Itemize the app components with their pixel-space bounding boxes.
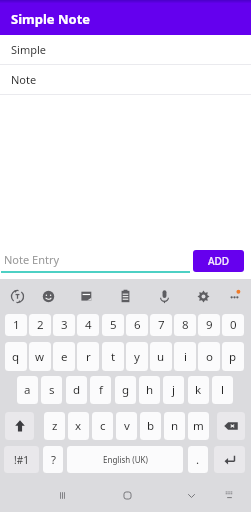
button[interactable]: r: [77, 342, 99, 371]
button[interactable]: v: [116, 412, 137, 440]
staticText: 8: [182, 317, 189, 333]
button[interactable]: 2: [29, 314, 51, 336]
staticText: w: [35, 349, 45, 365]
button[interactable]: d: [66, 376, 87, 404]
button[interactable]: 8: [174, 314, 196, 336]
button[interactable]: a: [17, 376, 38, 404]
button[interactable]: c: [92, 412, 113, 440]
button[interactable]: Clipboard: [110, 282, 140, 310]
button[interactable]: p: [222, 342, 244, 371]
button[interactable]: z: [44, 412, 65, 440]
staticText: ADD: [208, 254, 230, 268]
staticText: 7: [158, 317, 165, 333]
staticText: f: [99, 382, 103, 398]
button[interactable]: Enter: [214, 446, 245, 473]
button[interactable]: 0: [222, 314, 244, 336]
button[interactable]: 7: [150, 314, 172, 336]
button[interactable]: m: [188, 412, 209, 440]
staticText: m: [193, 418, 204, 434]
staticText: i: [184, 349, 187, 365]
button[interactable]: Switch keyboard: [215, 481, 243, 509]
button[interactable]: ADD: [193, 250, 244, 272]
button[interactable]: 5: [102, 314, 124, 336]
button[interactable]: g: [115, 376, 136, 404]
button[interactable]: Backspace: [217, 412, 245, 440]
staticText: 0: [230, 317, 237, 333]
staticText: 1: [13, 317, 20, 333]
staticText: 6: [134, 317, 141, 333]
button[interactable]: l: [212, 376, 233, 404]
staticText: Simple Note: [11, 10, 91, 28]
staticText: u: [157, 349, 165, 365]
button[interactable]: English (UK): [67, 446, 183, 473]
button[interactable]: Note: [0, 65, 251, 95]
button[interactable]: b: [140, 412, 161, 440]
button[interactable]: .: [188, 446, 208, 473]
staticText: k: [195, 382, 202, 398]
button[interactable]: 6: [126, 314, 148, 336]
staticText: 5: [110, 317, 117, 333]
staticText: p: [229, 349, 237, 365]
staticText: l: [221, 382, 224, 398]
button[interactable]: f: [90, 376, 111, 404]
staticText: 4: [85, 317, 92, 333]
staticText: 2: [37, 317, 44, 333]
button[interactable]: Simple: [0, 35, 251, 65]
staticText: ?: [51, 452, 56, 468]
button[interactable]: More options: [219, 282, 249, 310]
button[interactable]: ?: [43, 446, 63, 473]
staticText: n: [171, 418, 179, 434]
staticText: s: [49, 382, 55, 398]
button[interactable]: k: [188, 376, 209, 404]
button[interactable]: Voice input: [149, 282, 179, 310]
button[interactable]: y: [126, 342, 148, 371]
button[interactable]: j: [163, 376, 184, 404]
staticText: 9: [206, 317, 213, 333]
staticText: g: [122, 382, 130, 398]
staticText: h: [146, 382, 154, 398]
button[interactable]: w: [29, 342, 51, 371]
button[interactable]: s: [41, 376, 62, 404]
staticText: x: [75, 418, 82, 434]
button[interactable]: x: [68, 412, 89, 440]
staticText: Simple: [11, 42, 46, 57]
button[interactable]: u: [150, 342, 172, 371]
staticText: 3: [61, 317, 68, 333]
staticText: v: [124, 418, 130, 434]
staticText: r: [86, 349, 91, 365]
staticText: y: [134, 349, 140, 365]
staticText: q: [12, 349, 20, 365]
staticText: j: [172, 382, 175, 398]
button[interactable]: Hide keyboard: [177, 481, 205, 509]
button[interactable]: 3: [53, 314, 75, 336]
staticText: o: [206, 349, 213, 365]
button[interactable]: 9: [198, 314, 220, 336]
staticText: e: [61, 349, 68, 365]
button[interactable]: q: [5, 342, 27, 371]
button[interactable]: Recents: [48, 481, 76, 509]
button[interactable]: i: [174, 342, 196, 371]
staticText: English (UK): [103, 454, 148, 465]
staticText: d: [73, 382, 81, 398]
staticText: t: [111, 349, 116, 365]
staticText: a: [24, 382, 31, 398]
button[interactable]: 4: [77, 314, 99, 336]
staticText: c: [100, 418, 106, 434]
staticText: .: [196, 452, 200, 468]
button[interactable]: 1: [5, 314, 27, 336]
button[interactable]: Home: [113, 481, 141, 509]
button[interactable]: Stickers: [71, 282, 101, 310]
button[interactable]: Keyboard settings: [188, 282, 218, 310]
button[interactable]: Emoji: [33, 282, 63, 310]
button[interactable]: h: [139, 376, 160, 404]
button[interactable]: Translate: [2, 282, 32, 310]
button[interactable]: t: [102, 342, 124, 371]
staticText: !#1: [14, 453, 29, 467]
staticText: Note: [11, 72, 37, 87]
button[interactable]: !#1: [4, 446, 39, 473]
button[interactable]: e: [53, 342, 75, 371]
staticText: Note Entry: [4, 252, 60, 267]
button[interactable]: o: [198, 342, 220, 371]
button[interactable]: Shift: [5, 412, 34, 440]
button[interactable]: n: [164, 412, 185, 440]
